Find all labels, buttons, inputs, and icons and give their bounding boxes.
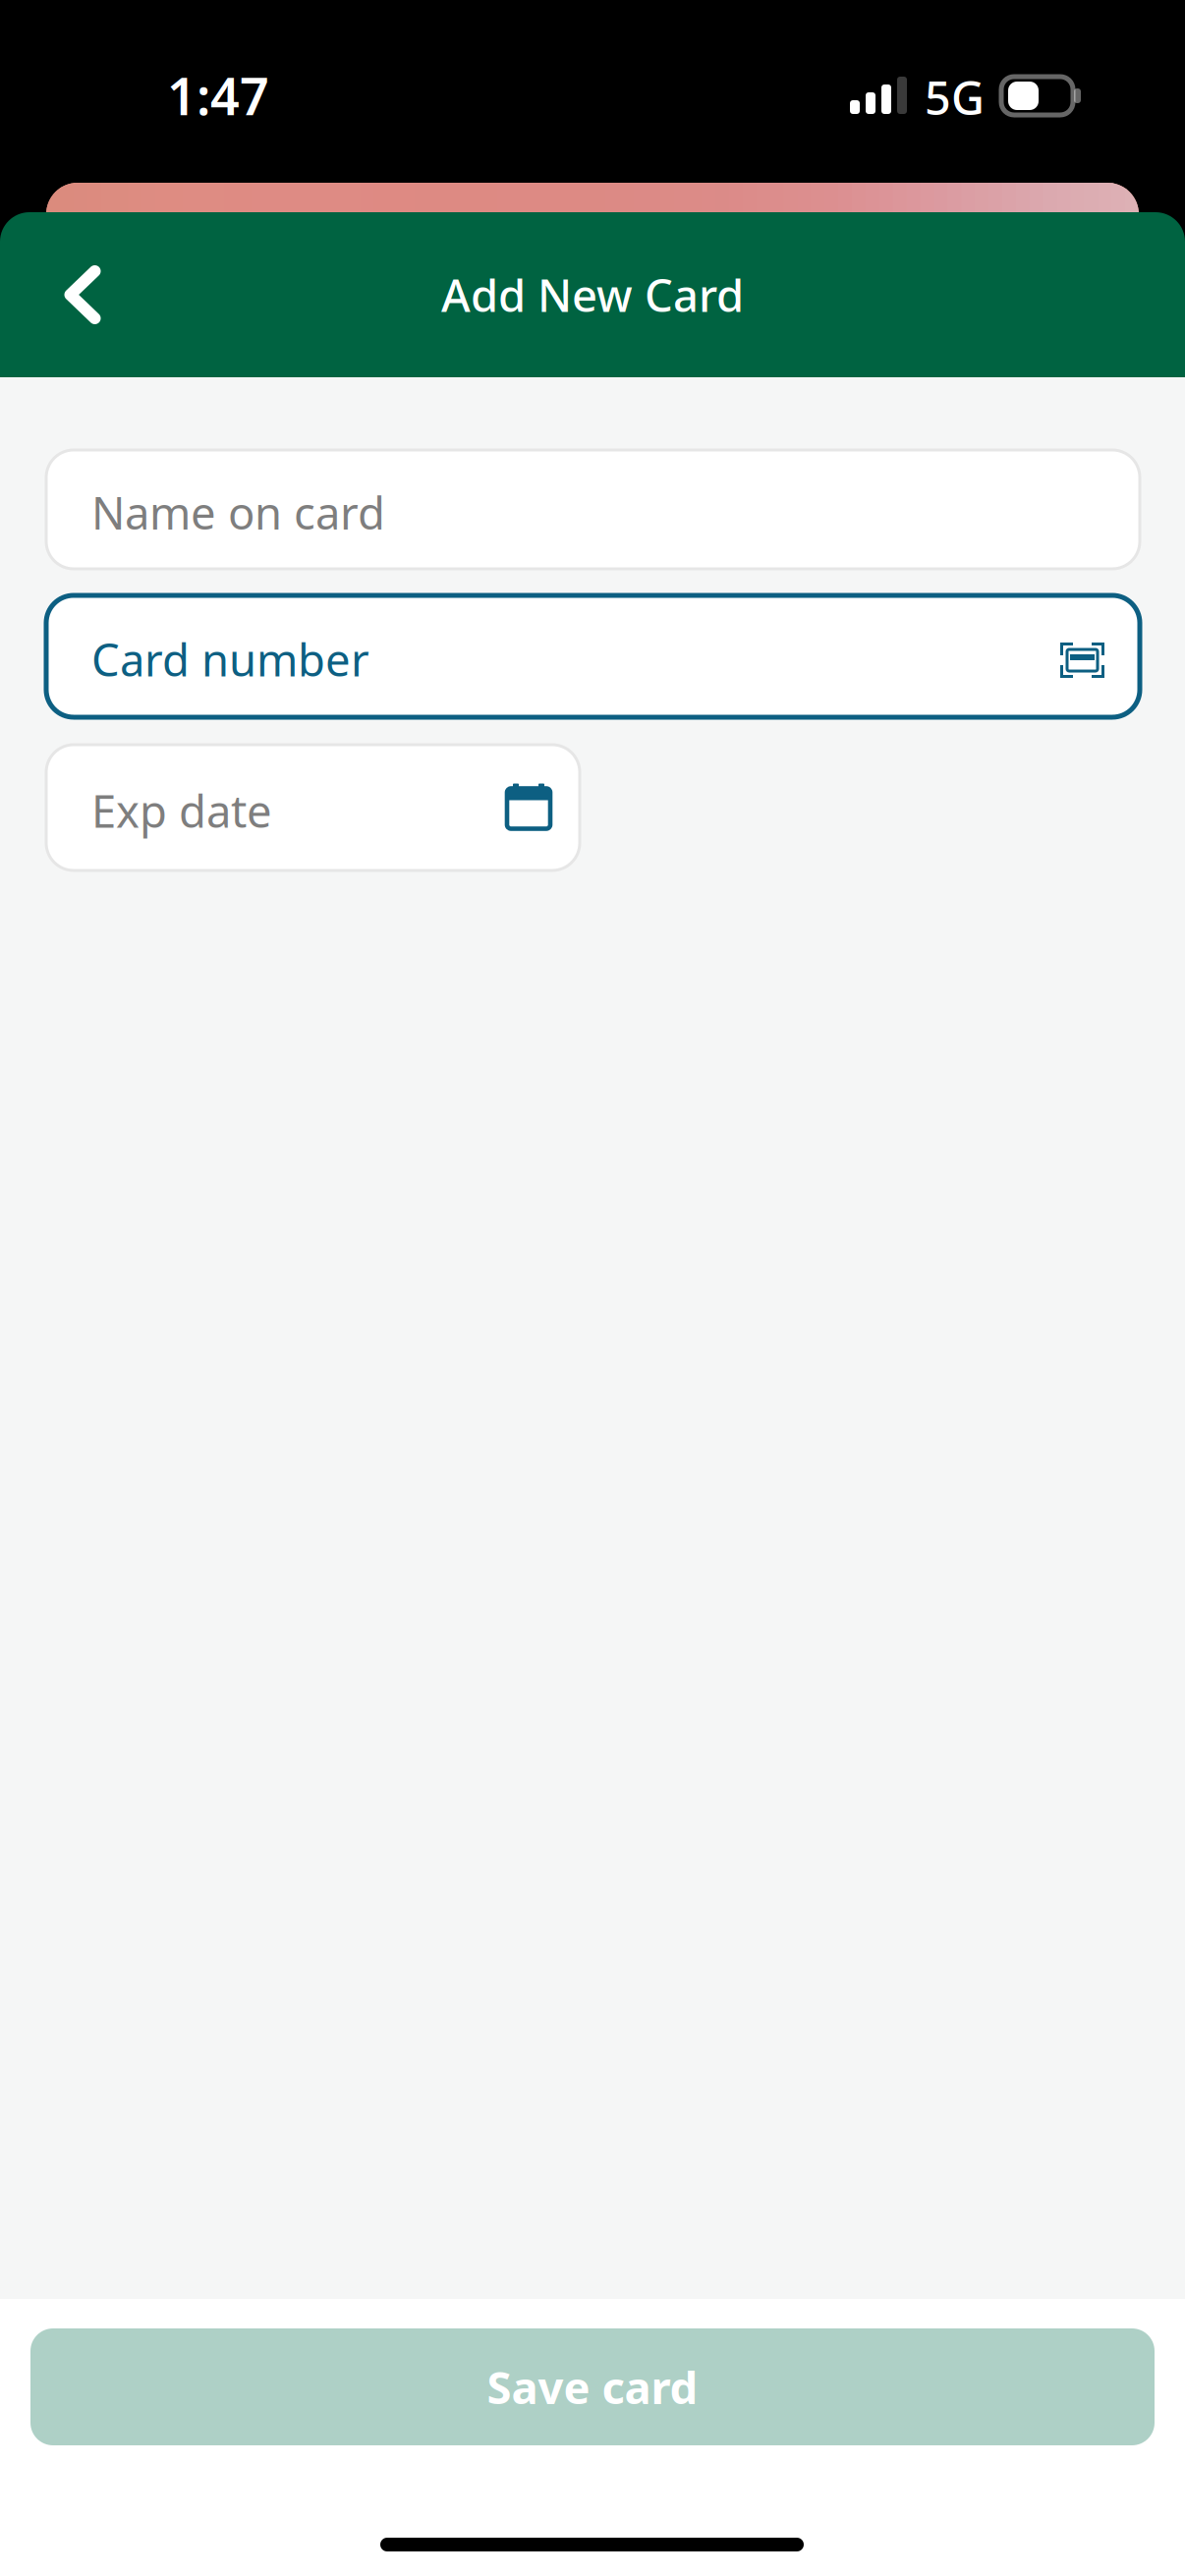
button[interactable]: Name on card (46, 450, 1140, 569)
button[interactable]: Card number (46, 595, 1140, 717)
staticText: Save card (487, 2357, 698, 2416)
button[interactable]: Exp date (46, 745, 580, 870)
staticText: Exp date (91, 781, 272, 840)
button[interactable]: Save card (30, 2328, 1155, 2445)
staticText: Name on card (91, 483, 385, 542)
staticText: 5G (925, 67, 985, 128)
staticText: Add New Card (441, 265, 744, 324)
staticText: 1:47 (167, 61, 269, 129)
staticText: Card number (91, 630, 369, 689)
button[interactable]: Back (19, 231, 146, 359)
